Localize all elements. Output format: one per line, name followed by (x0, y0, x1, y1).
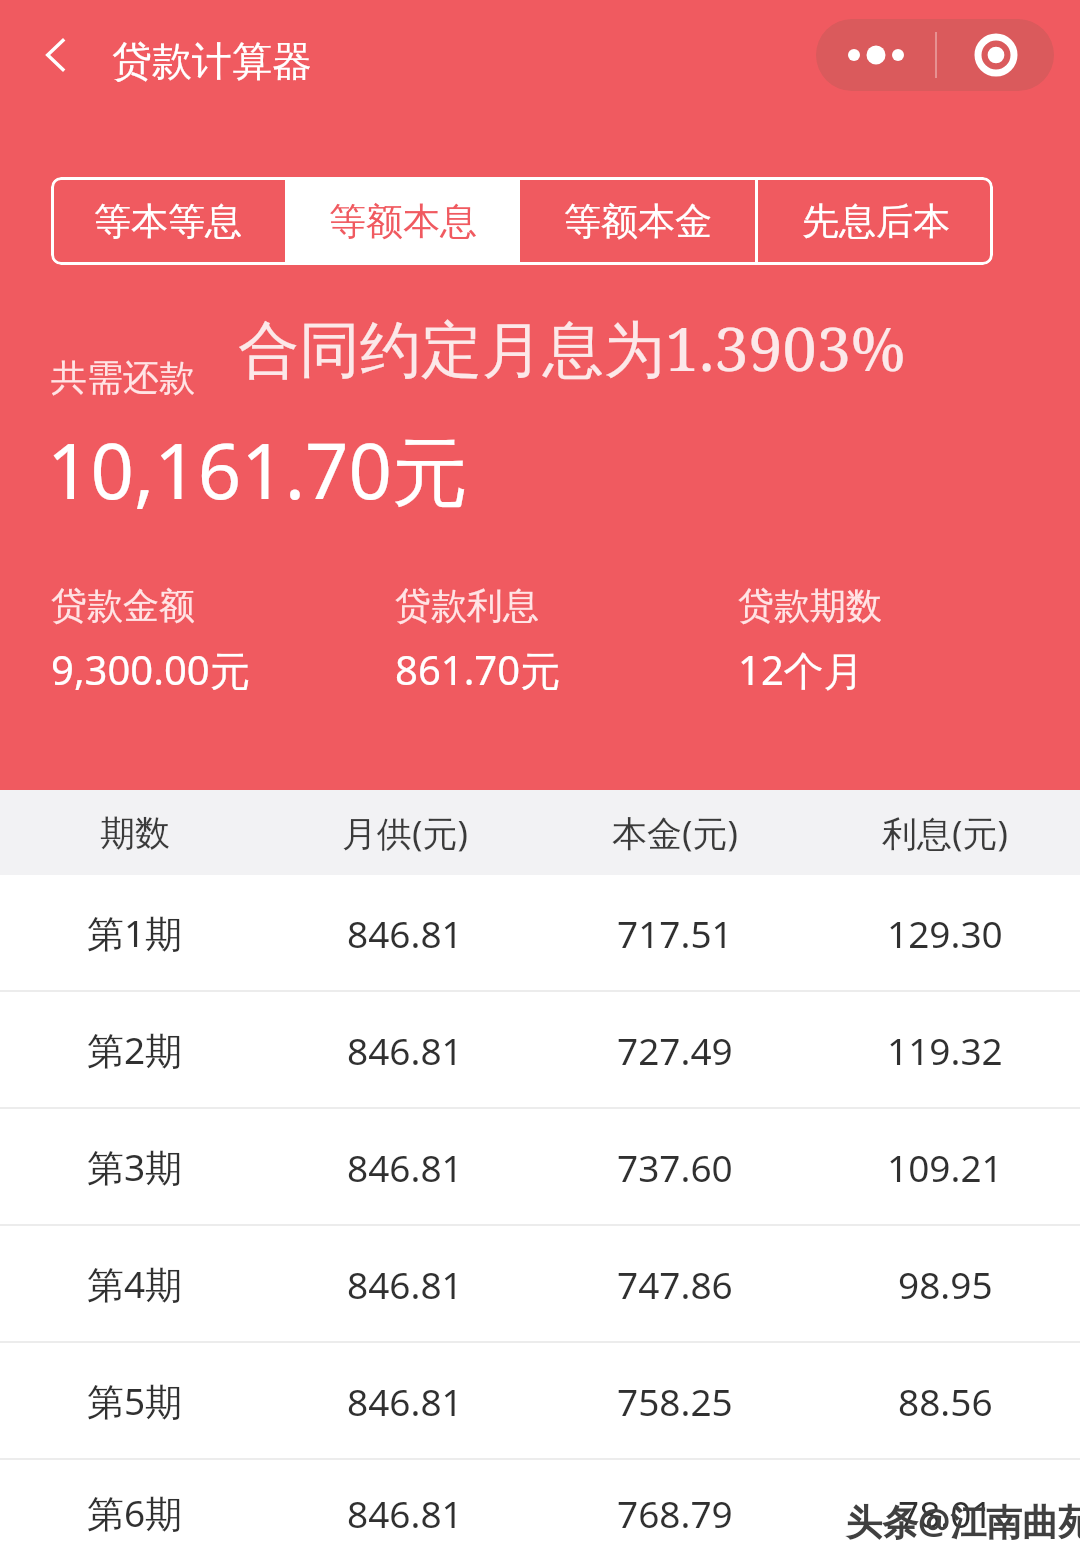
staticText: 共需还款 (51, 355, 195, 400)
staticText: 747.86 (617, 1259, 733, 1309)
button[interactable]: 等本等息 (51, 177, 285, 265)
staticText: 717.51 (617, 908, 733, 958)
staticText: 月供(元) (342, 809, 469, 857)
button[interactable]: 第5期 (0, 1343, 1080, 1458)
staticText: 第4期 (87, 1258, 183, 1309)
staticText: 第6期 (87, 1487, 183, 1538)
staticText: 贷款计算器 (112, 36, 312, 86)
staticText: 等额本息 (329, 198, 477, 245)
staticText: 78.01 (898, 1488, 993, 1538)
staticText: 109.21 (887, 1142, 1003, 1192)
staticText: 贷款利息 (395, 583, 539, 628)
button[interactable]: 第3期 (0, 1109, 1080, 1224)
staticText: 846.81 (347, 1376, 463, 1426)
staticText: 98.95 (898, 1259, 993, 1309)
staticText: 先息后本 (802, 198, 950, 245)
button[interactable]: 等额本金 (520, 177, 755, 265)
button[interactable]: 第2期 (0, 992, 1080, 1107)
staticText: 119.32 (887, 1025, 1003, 1075)
staticText: 846.81 (347, 908, 463, 958)
staticText: 9,300.00元 (51, 642, 250, 697)
staticText: 利息(元) (882, 809, 1009, 857)
staticText: 贷款期数 (738, 583, 882, 628)
button[interactable]: 第4期 (0, 1226, 1080, 1341)
staticText: 88.56 (898, 1376, 993, 1426)
button[interactable]: 等额本息 (285, 177, 520, 265)
staticText: 头条@江南曲苑 (846, 1497, 1080, 1546)
staticText: 846.81 (347, 1488, 463, 1538)
staticText: 727.49 (617, 1025, 733, 1075)
button[interactable]: Back (26, 24, 88, 86)
staticText: 合同约定月息为1.3903% (238, 306, 906, 389)
staticText: 846.81 (347, 1142, 463, 1192)
staticText: 期数 (100, 811, 170, 855)
staticText: 第2期 (87, 1024, 183, 1075)
staticText: 等本等息 (94, 198, 242, 245)
staticText: 846.81 (347, 1259, 463, 1309)
button[interactable]: More options (816, 19, 935, 91)
staticText: 第1期 (87, 907, 183, 958)
staticText: 846.81 (347, 1025, 463, 1075)
staticText: 贷款金额 (51, 583, 195, 628)
staticText: 12个月 (738, 642, 864, 697)
staticText: 768.79 (617, 1488, 733, 1538)
staticText: 10,161.70元 (47, 418, 469, 522)
button[interactable]: 第6期 (0, 1460, 1080, 1565)
staticText: 本金(元) (612, 809, 739, 857)
button[interactable]: 第1期 (0, 875, 1080, 990)
staticText: 第5期 (87, 1375, 183, 1426)
staticText: 第3期 (87, 1141, 183, 1192)
button[interactable]: 先息后本 (758, 177, 993, 265)
button[interactable]: Close mini program (937, 19, 1054, 91)
staticText: 等额本金 (564, 198, 712, 245)
staticText: 737.60 (617, 1142, 733, 1192)
staticText: 861.70元 (395, 642, 561, 697)
staticText: 758.25 (617, 1376, 733, 1426)
staticText: 129.30 (887, 908, 1003, 958)
